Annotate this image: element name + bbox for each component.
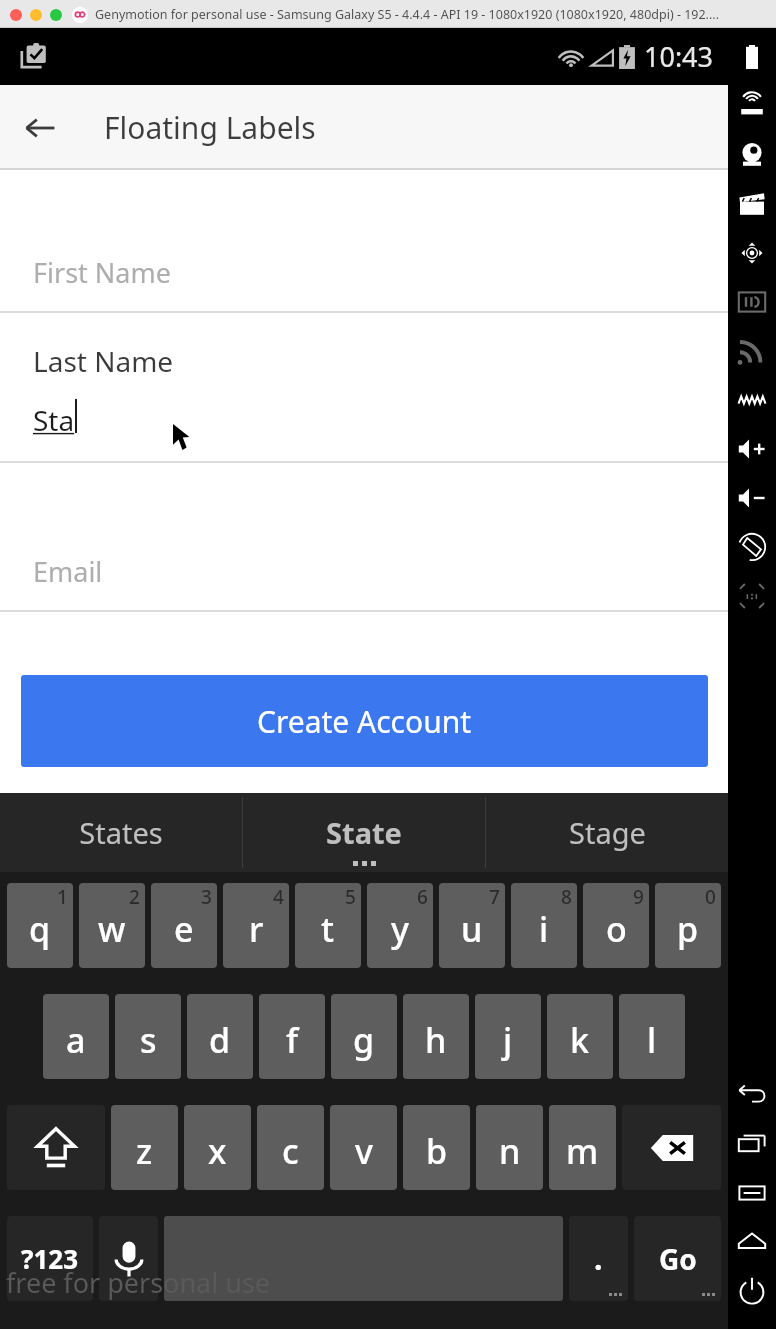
button[interactable]: w xyxy=(79,883,145,968)
button[interactable]: z xyxy=(111,1105,178,1190)
staticText: 7 xyxy=(489,884,500,910)
button[interactable]: d xyxy=(187,994,253,1079)
button[interactable]: State xyxy=(243,793,485,872)
button[interactable]: r xyxy=(223,883,289,968)
button[interactable]: Rotate xyxy=(728,522,776,571)
button[interactable]: Battery xyxy=(728,32,776,81)
button[interactable]: Email xyxy=(0,463,728,612)
button[interactable]: u xyxy=(439,883,505,968)
button[interactable]: n xyxy=(476,1105,543,1190)
button[interactable]: c xyxy=(257,1105,324,1190)
button[interactable]: Back xyxy=(12,100,68,156)
staticText: d xyxy=(209,1017,231,1063)
button[interactable]: Go xyxy=(634,1216,721,1301)
staticText: w xyxy=(98,906,126,952)
button[interactable]: i xyxy=(511,883,577,968)
button[interactable]: p xyxy=(655,883,721,968)
button[interactable]: Identifiers xyxy=(728,277,776,326)
button[interactable]: Volume down xyxy=(728,473,776,522)
button[interactable]: m xyxy=(549,1105,616,1190)
button[interactable]: First Name xyxy=(0,170,728,313)
button[interactable]: GPS xyxy=(728,81,776,130)
button[interactable]: Recents xyxy=(728,1119,776,1168)
button[interactable]: Home xyxy=(728,1217,776,1266)
staticText: 9 xyxy=(633,884,644,910)
staticText: Sta xyxy=(33,401,75,439)
button[interactable]: Create Account xyxy=(21,675,708,767)
staticText: ?123 xyxy=(21,1241,79,1276)
staticText: v xyxy=(355,1128,373,1174)
button[interactable]: Menu xyxy=(728,1168,776,1217)
staticText: h xyxy=(425,1017,447,1063)
button[interactable]: x xyxy=(184,1105,251,1190)
staticText: Floating Labels xyxy=(104,107,316,148)
staticText: a xyxy=(66,1017,86,1063)
button[interactable]: Scale 1:1 xyxy=(728,571,776,620)
staticText: 2 xyxy=(129,884,140,910)
button[interactable]: Baseband xyxy=(728,375,776,424)
button[interactable]: q xyxy=(7,883,73,968)
button[interactable]: Back xyxy=(728,1070,776,1119)
button[interactable]: ?123 xyxy=(7,1216,93,1301)
button[interactable]: y xyxy=(367,883,433,968)
staticText: c xyxy=(282,1128,299,1174)
button[interactable]: . xyxy=(569,1216,628,1301)
button[interactable]: b xyxy=(403,1105,470,1190)
button[interactable]: a xyxy=(43,994,109,1079)
staticText: f xyxy=(286,1017,299,1063)
staticText: Last Name xyxy=(33,342,174,380)
staticText: l xyxy=(647,1017,657,1063)
staticText: g xyxy=(353,1017,375,1063)
button[interactable]: Voice input xyxy=(99,1216,158,1301)
staticText: u xyxy=(461,906,483,952)
staticText: Create Account xyxy=(257,701,472,742)
button[interactable]: States xyxy=(0,793,242,872)
staticText: 1 xyxy=(57,884,68,910)
button[interactable]: Clapperboard xyxy=(728,179,776,228)
button[interactable]: v xyxy=(330,1105,397,1190)
button[interactable]: g xyxy=(331,994,397,1079)
button[interactable]: o xyxy=(583,883,649,968)
staticText: State xyxy=(326,813,402,852)
button[interactable]: Volume up xyxy=(728,424,776,473)
button[interactable]: Backspace xyxy=(622,1105,721,1190)
button[interactable]: Camera xyxy=(728,130,776,179)
button[interactable]: Network xyxy=(728,326,776,375)
staticText: 3 xyxy=(201,884,212,910)
button[interactable]: t xyxy=(295,883,361,968)
staticText: q xyxy=(29,906,51,952)
staticText: Email xyxy=(33,553,103,590)
staticText: First Name xyxy=(33,254,171,291)
staticText: . xyxy=(594,1238,603,1279)
button[interactable]: Rotate pad xyxy=(728,228,776,277)
button[interactable]: s xyxy=(115,994,181,1079)
button[interactable]: e xyxy=(151,883,217,968)
button[interactable]: Stage xyxy=(486,793,728,872)
staticText: j xyxy=(503,1017,513,1063)
staticText: k xyxy=(570,1017,590,1063)
staticText: 0 xyxy=(705,884,716,910)
staticText: o xyxy=(606,906,627,952)
button[interactable]: f xyxy=(259,994,325,1079)
staticText: e xyxy=(174,906,194,952)
button[interactable]: l xyxy=(619,994,685,1079)
staticText: m xyxy=(566,1128,599,1174)
button[interactable]: h xyxy=(403,994,469,1079)
staticText: r xyxy=(249,906,264,952)
staticText: 10:43 xyxy=(644,38,714,75)
staticText: 4 xyxy=(273,884,284,910)
button[interactable]: Power xyxy=(728,1266,776,1315)
staticText: 5 xyxy=(345,884,356,910)
button[interactable]: Shift xyxy=(7,1105,105,1190)
button[interactable]: k xyxy=(547,994,613,1079)
staticText: s xyxy=(140,1017,157,1063)
staticText: y xyxy=(391,906,409,952)
staticText: Genymotion for personal use - Samsung Ga… xyxy=(95,6,720,23)
staticText: 8 xyxy=(561,884,572,910)
button[interactable]: j xyxy=(475,994,541,1079)
button[interactable]: Last Name xyxy=(0,313,728,463)
staticText: t xyxy=(321,906,335,952)
staticText: z xyxy=(136,1128,153,1174)
staticText: n xyxy=(499,1128,521,1174)
